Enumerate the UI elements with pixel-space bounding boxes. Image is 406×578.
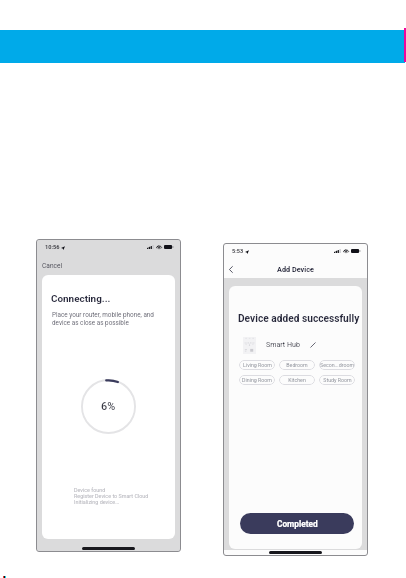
staticText: Add Device [277,265,314,274]
staticText: Smart Hub [266,340,300,348]
button[interactable]: Study Room [319,375,355,385]
button[interactable]: Completed [240,513,354,534]
staticText: Secon...droom [320,362,354,368]
staticText: Register Device to Smart Cloud [74,493,149,499]
staticText: Device found [74,487,106,493]
staticText: Device added successfully [238,313,360,325]
staticText: Study Room [323,377,352,383]
staticText: Dining Room [242,377,272,383]
button[interactable]: Back [225,264,236,275]
staticText: Completed [277,519,318,529]
button[interactable]: Living Room [239,360,275,370]
staticText: 10:56 [45,244,60,251]
staticText: Kitchen [288,377,306,383]
button[interactable]: Bedroom [279,360,315,370]
button[interactable]: Dining Room [239,375,275,385]
staticText: 5:53 [232,248,244,255]
button[interactable]: Edit device name [308,340,317,349]
button[interactable]: Kitchen [279,375,315,385]
button[interactable]: Cancel [42,262,63,270]
staticText: Bedroom [286,362,308,368]
staticText: Initializing device... [74,499,120,505]
button[interactable]: Secon...droom [319,360,355,370]
staticText: Living Room [243,362,272,368]
staticText: Connecting... [51,293,111,305]
staticText: 6% [101,400,116,413]
staticText: Place your router, mobile phone, and dev… [52,311,166,327]
